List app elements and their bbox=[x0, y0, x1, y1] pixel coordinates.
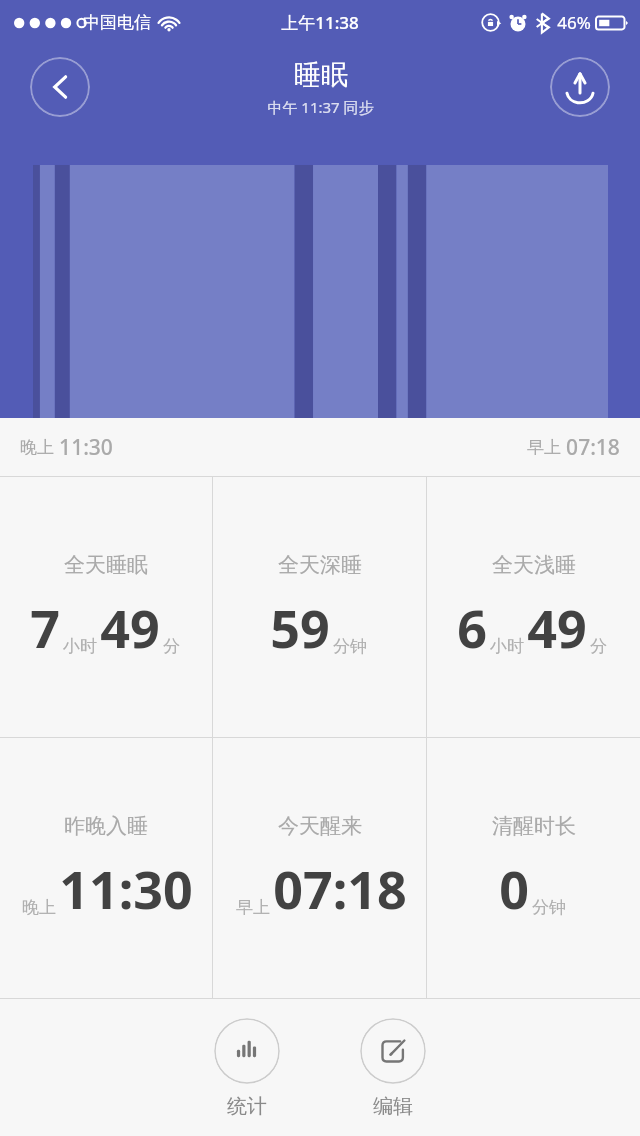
staticText: 小时 bbox=[490, 636, 524, 657]
staticText: 晚上 bbox=[20, 437, 54, 458]
button[interactable]: 昨晚入睡 bbox=[0, 738, 212, 998]
button[interactable]: 返回 bbox=[30, 57, 90, 117]
button[interactable]: 今天醒来 bbox=[213, 738, 426, 998]
staticText: 睡眠 bbox=[294, 58, 348, 92]
staticText: 11:30 bbox=[59, 433, 113, 462]
staticText: 早上 bbox=[236, 897, 270, 918]
staticText: 全天睡眠 bbox=[64, 552, 148, 578]
staticText: 分钟 bbox=[532, 897, 566, 918]
staticText: 分 bbox=[163, 636, 180, 657]
staticText: 6 bbox=[457, 592, 487, 663]
staticText: 分 bbox=[590, 636, 607, 657]
staticText: 11:30 bbox=[59, 853, 193, 924]
staticText: 早上 bbox=[527, 437, 561, 458]
staticText: 全天浅睡 bbox=[492, 552, 576, 578]
button[interactable]: 编辑 bbox=[352, 1014, 434, 1123]
button[interactable]: 全天睡眠 bbox=[0, 477, 212, 737]
staticText: 统计 bbox=[227, 1094, 267, 1119]
staticText: 中国电信 bbox=[83, 12, 151, 33]
button[interactable]: 全天浅睡 bbox=[427, 477, 640, 737]
staticText: 49 bbox=[527, 592, 587, 663]
staticText: 59 bbox=[270, 592, 330, 663]
staticText: 小时 bbox=[63, 636, 97, 657]
staticText: 46% bbox=[557, 11, 591, 34]
staticText: 今天醒来 bbox=[278, 813, 362, 839]
staticText: 7 bbox=[30, 592, 60, 663]
staticText: 清醒时长 bbox=[492, 813, 576, 839]
staticText: 晚上 bbox=[22, 897, 56, 918]
button[interactable]: 全天深睡 bbox=[213, 477, 426, 737]
staticText: 全天深睡 bbox=[278, 552, 362, 578]
staticText: 49 bbox=[100, 592, 160, 663]
staticText: 分钟 bbox=[333, 636, 367, 657]
staticText: 07:18 bbox=[566, 433, 620, 462]
staticText: 昨晚入睡 bbox=[64, 813, 148, 839]
staticText: 编辑 bbox=[373, 1094, 413, 1119]
button[interactable]: 统计 bbox=[206, 1014, 288, 1123]
staticText: 07:18 bbox=[273, 853, 407, 924]
button[interactable]: 清醒时长 bbox=[427, 738, 640, 998]
staticText: 中午 11:37 同步 bbox=[267, 97, 374, 117]
button[interactable]: 同步 bbox=[550, 57, 610, 117]
staticText: 上午11:38 bbox=[281, 11, 359, 34]
staticText: 0 bbox=[499, 853, 529, 924]
